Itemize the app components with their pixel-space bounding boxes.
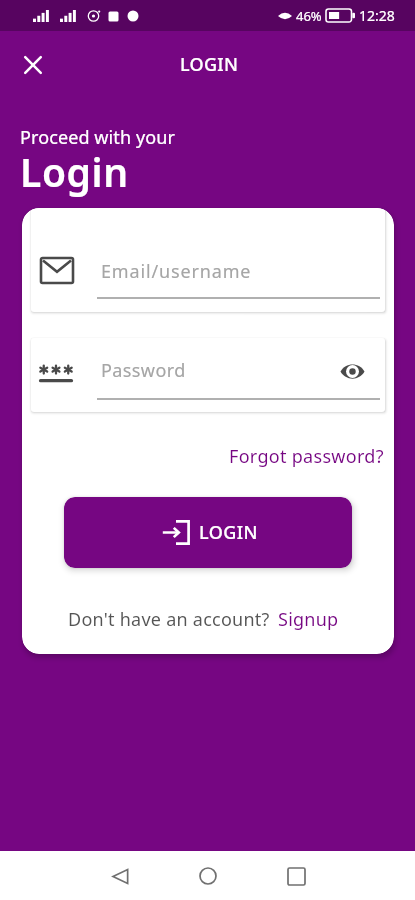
button[interactable]: Password: [31, 338, 385, 412]
staticText: LOGIN: [199, 520, 258, 545]
button[interactable]: Close: [16, 48, 50, 82]
button[interactable]: Forgot password?: [218, 438, 394, 475]
staticText: LOGIN: [180, 52, 239, 77]
staticText: Proceed with your: [20, 125, 175, 150]
button[interactable]: Home: [184, 852, 232, 900]
staticText: Login: [20, 145, 129, 198]
button[interactable]: Email/username: [31, 208, 385, 312]
button[interactable]: Signup: [278, 607, 339, 632]
button[interactable]: Recents: [272, 852, 320, 900]
staticText: Email/username: [101, 259, 252, 284]
staticText: Forgot password?: [229, 444, 384, 469]
staticText: Don't have an account?: [68, 607, 270, 632]
button[interactable]: LOGIN: [64, 497, 352, 568]
button[interactable]: Show password: [334, 353, 370, 389]
staticText: Password: [101, 358, 186, 383]
staticText: 12:28: [359, 6, 395, 25]
staticText: 46%: [296, 7, 322, 25]
button[interactable]: Back: [96, 852, 144, 900]
